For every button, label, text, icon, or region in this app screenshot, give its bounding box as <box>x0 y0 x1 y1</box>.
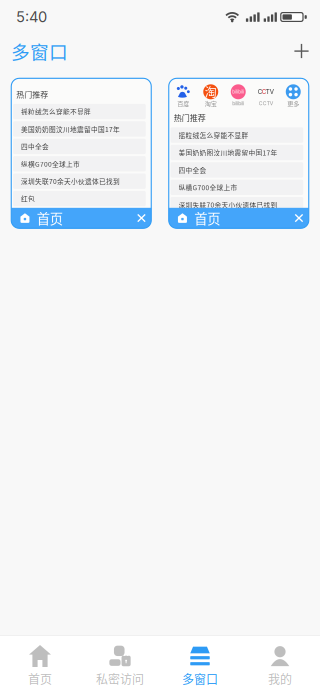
staticText: 四中全会 <box>179 165 207 175</box>
staticText: bilibili <box>232 100 244 106</box>
staticText: 美国奶奶图汶川地震留中国17年 <box>21 124 120 134</box>
staticText: 更多 <box>287 99 299 108</box>
staticText: bilibili <box>232 89 244 95</box>
button[interactable]: 深圳失联70余天小伙遗体已找到 <box>171 197 303 212</box>
button[interactable]: Close window <box>133 209 150 227</box>
button[interactable]: 四中全会 <box>171 162 303 178</box>
staticText: 纵横G700全球上市 <box>21 159 80 169</box>
button[interactable]: 美国奶奶图汶川地震留中国17年 <box>171 145 303 160</box>
button[interactable]: Close window <box>290 209 307 227</box>
button[interactable]: New window <box>288 38 315 64</box>
staticText: 首页 <box>28 670 52 687</box>
staticText: 5:40 <box>16 8 47 26</box>
staticText: 首页 <box>37 208 63 228</box>
button[interactable]: 摇粒绒怎么穿能不显胖 <box>171 127 303 143</box>
staticText: C <box>262 88 266 95</box>
button[interactable]: 多窗口 <box>160 636 240 690</box>
staticText: 我的 <box>268 670 292 687</box>
button[interactable]: 美国奶奶图汶川地震留中国17年 <box>13 121 146 137</box>
staticText: TV <box>266 88 274 95</box>
staticText: 摇粒绒怎么穿能不显胖 <box>21 107 91 116</box>
staticText: 热门推荐 <box>174 112 206 123</box>
button[interactable]: 深圳失联70余天小伙遗体已找到 <box>13 173 146 189</box>
staticText: 红包 <box>21 194 35 203</box>
button[interactable]: 四中全会 <box>13 139 146 154</box>
button[interactable]: 纵横G700全球上市 <box>13 156 146 171</box>
staticText: 淘宝 <box>205 99 217 108</box>
button[interactable]: 更多 <box>283 84 304 106</box>
button[interactable]: 热门推荐 <box>11 78 151 228</box>
button[interactable]: 摇粒绒怎么穿能不显胖 <box>13 104 146 119</box>
button[interactable]: bilibili <box>228 84 249 106</box>
button[interactable]: 我的 <box>240 636 320 690</box>
staticText: 四中全会 <box>21 142 49 151</box>
button[interactable]: 首页 <box>0 636 80 690</box>
staticText: 纵横G700全球上市 <box>179 182 238 192</box>
staticText: 深圳失联70余天小伙遗体已找到 <box>21 176 120 186</box>
button[interactable]: 淘 <box>200 84 221 106</box>
staticText: CCTV <box>259 100 273 106</box>
button[interactable]: 百度 <box>169 78 309 228</box>
staticText: 美国奶奶图汶川地震留中国17年 <box>179 148 278 157</box>
staticText: 深圳失联70余天小伙遗体已找到 <box>179 200 278 210</box>
staticText: 私密访问 <box>96 670 144 687</box>
button[interactable]: 百度 <box>173 84 194 106</box>
button[interactable]: C <box>255 84 276 106</box>
staticText: 百度 <box>177 99 189 108</box>
button[interactable]: 纵横G700全球上市 <box>171 180 303 195</box>
staticText: 首页 <box>194 208 220 228</box>
button[interactable]: 私密访问 <box>80 636 160 690</box>
staticText: 热门推荐 <box>16 88 48 100</box>
staticText: 淘 <box>205 83 217 100</box>
button[interactable]: 红包 <box>13 191 146 206</box>
staticText: C <box>258 88 262 95</box>
staticText: 多窗口 <box>182 670 218 687</box>
staticText: 摇粒绒怎么穿能不显胖 <box>179 130 249 140</box>
staticText: 多窗口 <box>11 37 68 64</box>
